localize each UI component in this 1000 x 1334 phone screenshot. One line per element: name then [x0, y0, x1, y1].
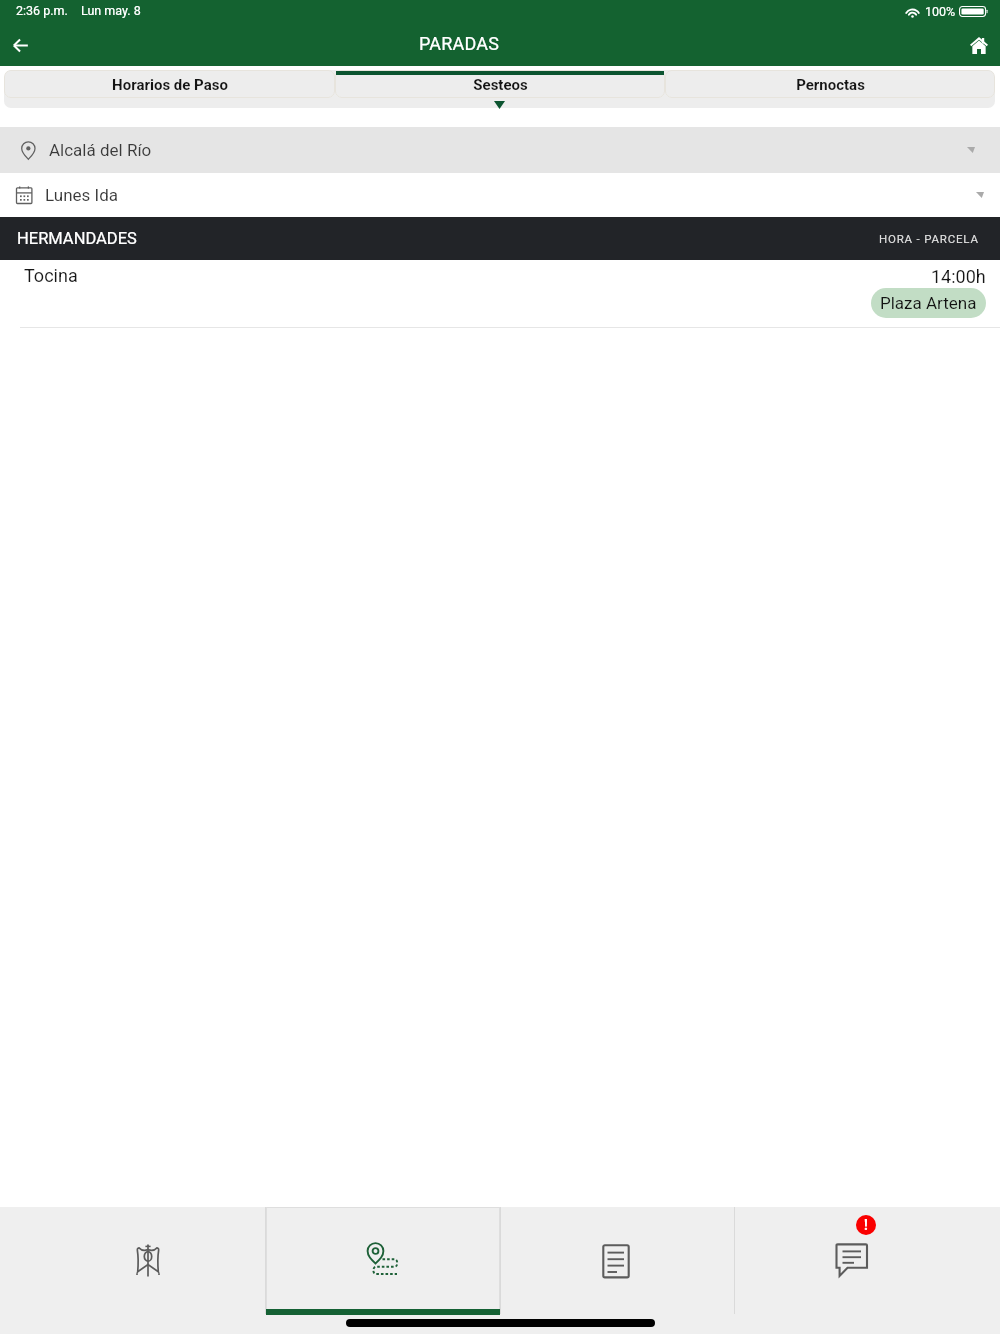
- button[interactable]: Documentos: [500, 1207, 734, 1315]
- button[interactable]: Pernoctas: [665, 70, 995, 98]
- staticText: 100%: [925, 4, 956, 19]
- staticText: !: [864, 1217, 868, 1233]
- button[interactable]: Home: [959, 25, 999, 65]
- button[interactable]: Hermandades: [0, 1207, 266, 1315]
- button[interactable]: Mensajes: [734, 1207, 1000, 1315]
- staticText: Alcalá del Río: [49, 140, 152, 160]
- staticText: Lunes Ida: [45, 185, 119, 205]
- button[interactable]: Horarios de Paso: [4, 70, 335, 98]
- button[interactable]: Lunes Ida: [0, 173, 1000, 217]
- staticText: PARADAS: [419, 33, 500, 54]
- staticText: Pernoctas: [796, 76, 865, 94]
- button[interactable]: Paradas: [266, 1207, 500, 1315]
- button[interactable]: Sesteos: [335, 70, 665, 98]
- staticText: 2:36 p.m.: [16, 3, 68, 18]
- staticText: HERMANDADES: [17, 229, 137, 248]
- staticText: Tocina: [24, 265, 78, 286]
- staticText: Lun may. 8: [81, 3, 141, 18]
- staticText: HORA - PARCELA: [879, 232, 979, 245]
- staticText: Horarios de Paso: [112, 76, 228, 94]
- button[interactable]: Tocina: [0, 260, 1000, 328]
- button[interactable]: Back: [0, 25, 40, 65]
- staticText: Sesteos: [473, 76, 528, 94]
- button[interactable]: Alcalá del Río: [0, 127, 1000, 173]
- staticText: 14:00h: [931, 266, 986, 287]
- staticText: Plaza Artena: [880, 293, 977, 313]
